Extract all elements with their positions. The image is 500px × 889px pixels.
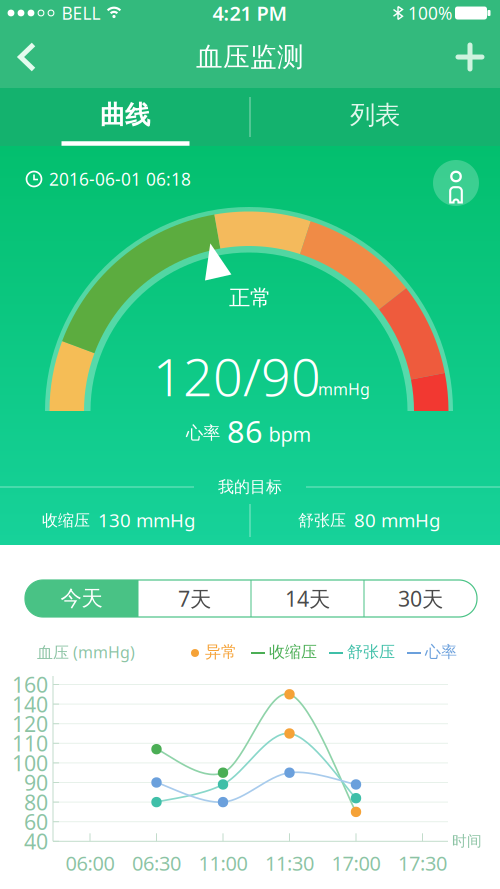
staticText: 80 (24, 788, 48, 816)
button[interactable]: Back (5, 35, 49, 79)
staticText: 收缩压 (42, 511, 90, 530)
staticText: 异常 (205, 642, 237, 662)
staticText: 正常 (229, 285, 271, 311)
staticText: 舒张压 (298, 511, 346, 530)
staticText: 86 (227, 411, 263, 451)
button[interactable]: 14天 (252, 580, 362, 617)
staticText: 血压 (mmHg) (37, 641, 135, 663)
button[interactable]: 列表 (250, 88, 500, 142)
staticText: 06:00 (65, 850, 114, 876)
staticText: 17:00 (331, 850, 380, 876)
staticText: 06:30 (132, 850, 181, 876)
button[interactable]: Add (448, 35, 492, 79)
staticText: 60 (24, 807, 48, 836)
button[interactable]: 30天 (365, 580, 475, 617)
staticText: 心率 (425, 642, 457, 662)
staticText: 2016-06-01 06:18 (49, 167, 191, 190)
button[interactable]: 7天 (139, 580, 249, 617)
staticText: 100 (12, 749, 48, 777)
staticText: 曲线 (100, 99, 150, 130)
staticText: 11:00 (198, 850, 247, 876)
staticText: 130 mmHg (98, 508, 195, 532)
button[interactable]: 今天 (25, 580, 138, 617)
staticText: 40 (24, 827, 48, 855)
staticText: 90 (24, 768, 48, 797)
staticText: 列表 (350, 99, 400, 130)
staticText: 17:30 (398, 850, 447, 876)
staticText: 100% (408, 1, 452, 24)
button[interactable]: 曲线 (0, 88, 250, 142)
staticText: 7天 (178, 584, 211, 613)
staticText: 时间 (452, 832, 482, 850)
staticText: 心率 (186, 422, 220, 444)
staticText: bpm (268, 421, 311, 447)
staticText: 今天 (60, 585, 102, 612)
staticText: mmHg (318, 378, 370, 400)
staticText: 110 (12, 729, 48, 757)
staticText: 80 mmHg (354, 508, 440, 532)
staticText: 30天 (398, 584, 443, 613)
staticText: 4:21 PM (212, 0, 287, 26)
staticText: 14天 (285, 584, 330, 613)
staticText: 120 (12, 709, 48, 738)
staticText: 140 (12, 690, 48, 718)
staticText: 我的目标 (218, 477, 282, 497)
button[interactable]: Profile (433, 160, 479, 206)
staticText: 血压监测 (196, 41, 304, 73)
staticText: 收缩压 (269, 642, 317, 662)
staticText: BELL (61, 1, 100, 24)
staticText: 舒张压 (347, 642, 395, 662)
staticText: 160 (12, 670, 48, 699)
staticText: 11:30 (265, 850, 314, 876)
staticText: 120/90 (153, 341, 321, 411)
